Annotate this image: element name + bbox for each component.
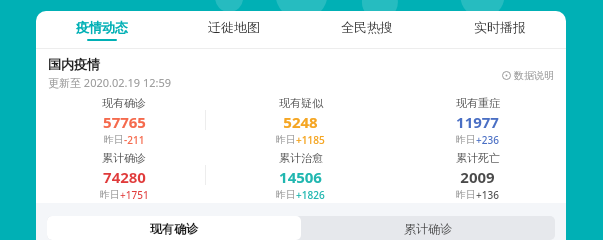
staticText: 疫情动态 bbox=[76, 19, 128, 35]
button[interactable]: 累计死亡 bbox=[389, 151, 566, 199]
button[interactable]: 疫情动态 bbox=[36, 11, 168, 48]
staticText: +236 bbox=[476, 133, 499, 144]
staticText: 昨日 bbox=[456, 188, 476, 199]
staticText: 昨日 bbox=[276, 188, 296, 199]
staticText: 昨日 bbox=[104, 133, 124, 144]
staticText: 国内疫情 bbox=[48, 56, 100, 72]
staticText: 实时播报 bbox=[474, 19, 526, 35]
button[interactable]: 实时播报 bbox=[433, 11, 566, 48]
staticText: 57765 bbox=[103, 112, 146, 132]
button[interactable]: 现有确诊 bbox=[36, 96, 212, 144]
staticText: 数据说明 bbox=[514, 69, 554, 82]
staticText: 迁徙地图 bbox=[208, 19, 260, 35]
staticText: 昨日 bbox=[100, 188, 120, 199]
staticText: +136 bbox=[476, 188, 499, 199]
button[interactable]: 数据说明 bbox=[500, 67, 556, 84]
staticText: +1751 bbox=[120, 188, 149, 199]
staticText: 累计确诊 bbox=[404, 221, 452, 236]
button[interactable]: 现有重症 bbox=[389, 96, 566, 144]
staticText: 全民热搜 bbox=[341, 19, 393, 35]
staticText: 昨日 bbox=[276, 133, 296, 144]
staticText: 现有疑似 bbox=[279, 96, 323, 110]
staticText: 现有确诊 bbox=[102, 96, 146, 110]
button[interactable]: 现有确诊 bbox=[47, 216, 301, 240]
staticText: -211 bbox=[124, 133, 145, 144]
staticText: 74280 bbox=[103, 167, 146, 187]
staticText: 累计治愈 bbox=[279, 151, 323, 165]
button[interactable]: 累计确诊 bbox=[301, 216, 555, 240]
button[interactable]: 累计治愈 bbox=[212, 151, 389, 199]
staticText: 11977 bbox=[456, 112, 499, 132]
staticText: 现有重症 bbox=[456, 96, 500, 110]
staticText: 5248 bbox=[283, 112, 318, 132]
staticText: +1185 bbox=[296, 133, 325, 144]
staticText: 2009 bbox=[460, 167, 495, 187]
staticText: 现有确诊 bbox=[150, 221, 198, 236]
staticText: 昨日 bbox=[456, 133, 476, 144]
staticText: 累计确诊 bbox=[102, 151, 146, 165]
button[interactable]: 迁徙地图 bbox=[168, 11, 300, 48]
staticText: 累计死亡 bbox=[456, 151, 500, 165]
button[interactable]: 全民热搜 bbox=[300, 11, 433, 48]
button[interactable]: 现有疑似 bbox=[212, 96, 389, 144]
staticText: +1826 bbox=[296, 188, 325, 199]
button[interactable]: 累计确诊 bbox=[36, 151, 212, 199]
staticText: 14506 bbox=[279, 167, 322, 187]
staticText: 更新至 2020.02.19 12:59 bbox=[48, 75, 172, 90]
